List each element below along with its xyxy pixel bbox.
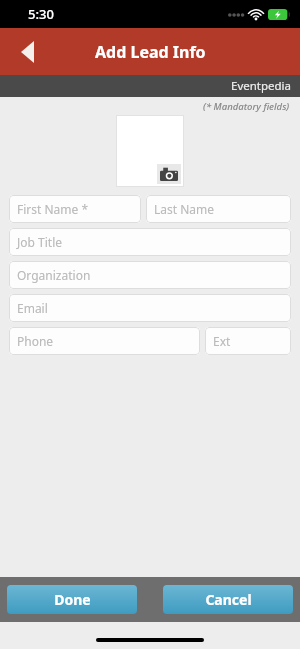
button[interactable]: Done: [7, 585, 137, 614]
staticText: Last Name: [154, 201, 215, 217]
staticText: Job Title: [17, 234, 63, 250]
button[interactable]: Last Name: [146, 195, 291, 223]
button[interactable]: Cancel: [163, 585, 293, 614]
button[interactable]: Job Title: [9, 228, 291, 256]
button[interactable]: First Name *: [9, 195, 141, 223]
staticText: Phone: [17, 333, 54, 349]
button[interactable]: Phone: [9, 327, 200, 355]
staticText: Ext: [213, 333, 231, 349]
button[interactable]: Add photo: [116, 115, 184, 187]
staticText: Add Lead Info: [95, 41, 206, 63]
button[interactable]: Email: [9, 294, 291, 322]
staticText: Organization: [17, 267, 91, 283]
button[interactable]: Ext: [205, 327, 291, 355]
staticText: Done: [54, 590, 91, 609]
staticText: Eventpedia: [231, 78, 292, 94]
button[interactable]: Organization: [9, 261, 291, 289]
staticText: First Name *: [17, 201, 89, 217]
staticText: 5:30: [28, 5, 54, 23]
staticText: Email: [17, 300, 48, 316]
staticText: Cancel: [205, 590, 252, 609]
staticText: (* Mandatory fields): [203, 100, 290, 113]
button[interactable]: Back: [8, 33, 46, 71]
